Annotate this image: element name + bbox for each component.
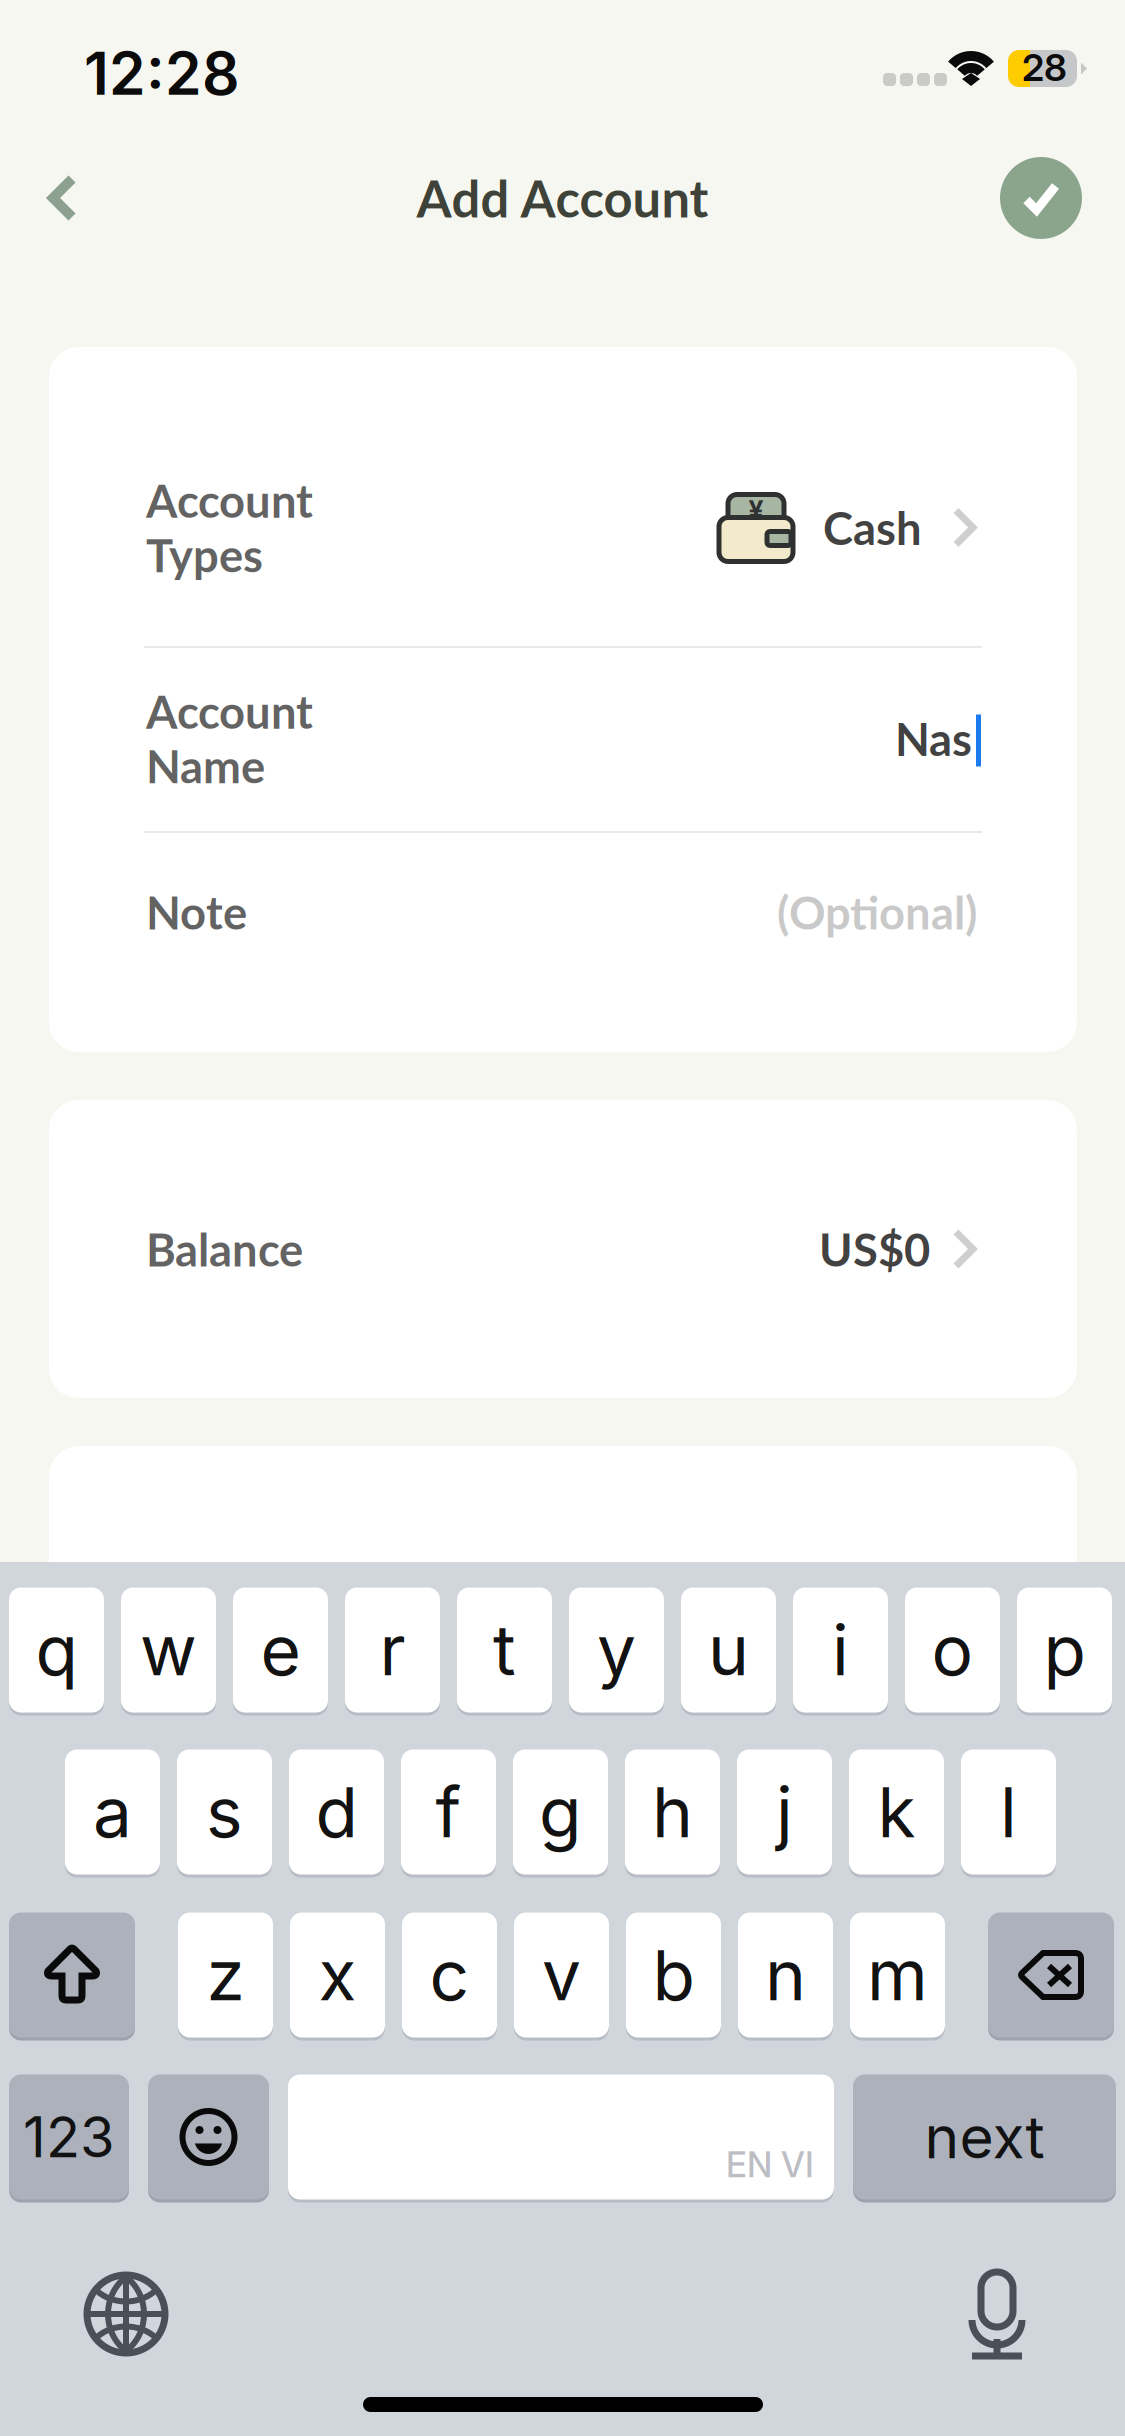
staticText: a [93,1770,132,1854]
staticText: d [315,1770,357,1854]
staticText: Note [146,885,247,939]
staticText: n [765,1933,806,2017]
staticText: e [260,1608,300,1692]
button[interactable]: Back [8,143,118,253]
staticText: w [140,1608,197,1692]
button[interactable]: Dictate [942,2262,1052,2372]
staticText: Cash [823,500,922,555]
button[interactable]: Switch keyboard [71,2259,181,2369]
button[interactable]: e [233,1586,328,1714]
button[interactable]: f [401,1748,496,1876]
staticText: k [877,1770,915,1854]
staticText: i [832,1608,849,1692]
button[interactable]: s [177,1748,272,1876]
button[interactable]: q [9,1586,104,1714]
button[interactable]: o [905,1586,1000,1714]
button[interactable]: x [290,1911,385,2039]
button[interactable]: n [738,1911,833,2039]
button[interactable]: m [850,1911,945,2039]
staticText: p [1043,1608,1085,1692]
button[interactable]: r [345,1586,440,1714]
staticText: z [206,1933,244,2017]
button[interactable]: i [793,1586,888,1714]
button[interactable]: Emoji [148,2073,269,2201]
staticText: x [318,1933,356,2017]
staticText: 123 [23,2103,115,2171]
staticText: Add Account [416,168,708,228]
button[interactable]: Space [288,2073,834,2201]
staticText: r [379,1608,405,1692]
button[interactable]: k [849,1748,944,1876]
staticText: o [931,1608,973,1692]
staticText: g [539,1770,582,1854]
staticText: f [435,1770,461,1854]
button[interactable]: t [457,1586,552,1714]
staticText: 12:28 [84,38,240,109]
button[interactable]: 123 [9,2073,129,2201]
button[interactable]: g [513,1748,608,1876]
button[interactable]: Account Types [49,347,1077,1052]
staticText: y [597,1608,636,1692]
button[interactable]: Save [986,143,1096,253]
staticText: s [206,1770,243,1854]
button[interactable]: c [402,1911,497,2039]
button[interactable]: Delete [988,1911,1114,2039]
staticText: Account Name [146,684,313,793]
button[interactable]: d [289,1748,384,1876]
staticText: l [1000,1770,1017,1854]
button[interactable]: a [65,1748,160,1876]
button[interactable]: y [569,1586,664,1714]
button[interactable]: u [681,1586,776,1714]
staticText: t [493,1608,516,1692]
staticText: u [708,1608,749,1692]
button[interactable]: w [121,1586,216,1714]
button[interactable]: next [853,2073,1116,2201]
staticText: ¥ [748,494,763,527]
staticText: q [35,1608,77,1692]
staticText: Balance [146,1222,303,1276]
button[interactable]: j [737,1748,832,1876]
staticText: (Optional) [777,885,977,939]
button[interactable]: h [625,1748,720,1876]
staticText: next [924,2101,1044,2172]
staticText: j [776,1770,793,1854]
staticText: c [429,1933,469,2017]
staticText: m [867,1933,928,2017]
button[interactable]: z [178,1911,273,2039]
button[interactable]: Balance [49,1100,1077,1398]
button[interactable]: Shift [9,1911,135,2039]
staticText: Nas [895,711,972,766]
staticText: US$0 [819,1222,930,1276]
staticText: Account Types [146,473,313,582]
button[interactable]: p [1017,1586,1112,1714]
button[interactable]: b [626,1911,721,2039]
staticText: 28 [1022,45,1067,90]
button[interactable]: v [514,1911,609,2039]
staticText: EN VI [726,2144,814,2185]
staticText: h [652,1770,693,1854]
staticText: b [652,1933,694,2017]
button[interactable]: l [961,1748,1056,1876]
staticText: v [542,1933,581,2017]
